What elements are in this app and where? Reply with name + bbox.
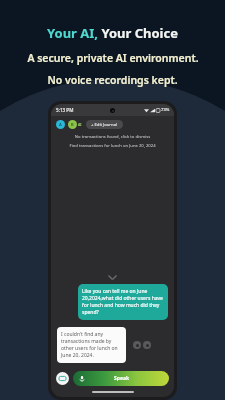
staticText: 5:13 PM xyxy=(56,107,74,113)
staticText: 73% xyxy=(161,107,170,113)
staticText: Find transactions for lunch on June 20, … xyxy=(51,143,174,149)
staticText: AI xyxy=(78,122,82,127)
staticText: B xyxy=(71,122,74,127)
button[interactable]: More options xyxy=(143,341,151,349)
staticText: I couldn't find any transactions made by… xyxy=(61,331,122,359)
staticText: No voice recordings kept. xyxy=(47,73,178,87)
button[interactable]: Keyboard xyxy=(56,372,69,385)
button[interactable]: Like you can tell me on June 20,2024,wha… xyxy=(78,284,168,320)
button[interactable]: I couldn't find any transactions made by… xyxy=(57,327,126,363)
staticText: Speak xyxy=(114,375,129,382)
staticText: A secure, private AI environment. xyxy=(27,51,199,65)
button[interactable]: Copy xyxy=(133,341,141,349)
button[interactable]: Profile xyxy=(68,120,77,129)
button[interactable]: + Edit Journal xyxy=(86,120,123,129)
button[interactable]: Speak xyxy=(73,371,169,386)
button[interactable]: Account xyxy=(56,120,65,129)
staticText: A xyxy=(59,122,62,127)
staticText: No transactions found, click to dismiss xyxy=(51,134,174,140)
staticText: + Edit Journal xyxy=(91,122,118,128)
staticText: Your AI, Your Choice xyxy=(47,24,178,42)
staticText: Like you can tell me on June 20,2024,wha… xyxy=(82,288,164,316)
